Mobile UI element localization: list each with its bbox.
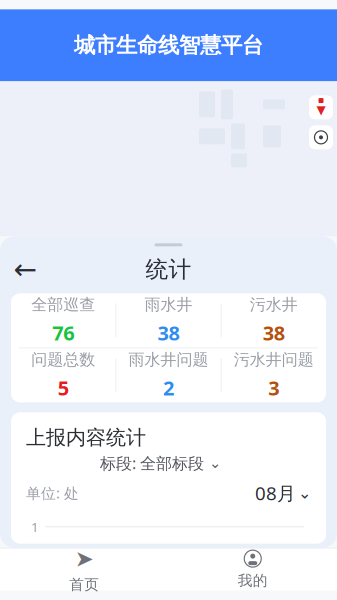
staticText: 污水井问题 — [234, 350, 314, 369]
staticText: 38 — [157, 319, 179, 346]
staticText: ← — [13, 253, 36, 285]
staticText: 单位: 处 — [26, 483, 79, 503]
staticText: 标段: 全部标段 — [100, 452, 204, 473]
staticText: 污水井 — [250, 295, 298, 314]
staticText: 雨水井问题 — [128, 350, 208, 369]
staticText: 问题总数 — [31, 350, 95, 369]
staticText: 2 — [163, 374, 174, 401]
staticText: ⌄ — [204, 455, 221, 471]
button[interactable]: 地图标记 — [309, 95, 333, 119]
staticText: ⌄ — [298, 484, 311, 502]
staticText: 08月 — [255, 480, 296, 505]
staticText: 38 — [263, 319, 285, 346]
staticText: 5 — [58, 374, 69, 401]
staticText: 全部巡查 — [31, 295, 95, 314]
staticText: ➤ — [75, 546, 94, 571]
staticText: ▼ — [316, 103, 325, 117]
staticText: 统计 — [145, 255, 191, 283]
staticText: 76 — [52, 319, 74, 346]
button[interactable]: ➤ — [0, 549, 168, 591]
button[interactable]: 返回 — [8, 254, 42, 284]
staticText: 首页 — [69, 575, 99, 593]
staticText: 雨水井 — [144, 295, 192, 314]
button[interactable]: 标段: 全部标段 — [11, 450, 326, 476]
button[interactable]: 08月 — [255, 482, 311, 504]
button[interactable]: 定位 — [309, 125, 333, 149]
staticText: 城市生命线智慧平台 — [74, 32, 263, 58]
staticText: 上报内容统计 — [26, 425, 146, 450]
staticText: 3 — [268, 374, 279, 401]
staticText: 我的 — [238, 572, 268, 590]
staticText: 1 — [31, 518, 39, 536]
button[interactable]: 我的 — [168, 549, 337, 591]
